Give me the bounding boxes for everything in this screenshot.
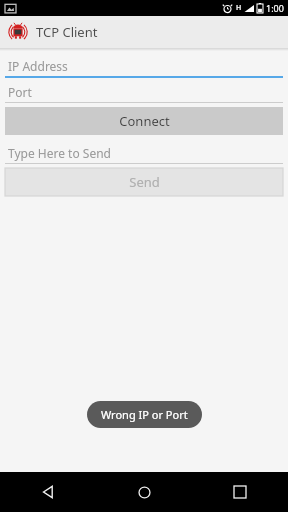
button[interactable]: Home bbox=[96, 472, 192, 512]
button[interactable]: Recent apps bbox=[192, 472, 288, 512]
button[interactable]: Port bbox=[5, 81, 283, 103]
staticText: Port bbox=[8, 84, 32, 100]
button[interactable]: Back bbox=[0, 472, 96, 512]
staticText: TCP Client bbox=[36, 23, 98, 41]
staticText: IP Address bbox=[8, 58, 68, 74]
staticText: Send bbox=[129, 173, 160, 191]
staticText: H bbox=[236, 3, 242, 13]
button[interactable]: Connect bbox=[5, 107, 283, 135]
staticText: Type Here to Send bbox=[8, 145, 111, 161]
staticText: Connect bbox=[119, 112, 170, 130]
button[interactable]: Type Here to Send bbox=[5, 142, 283, 164]
staticText: Wrong IP or Port bbox=[101, 407, 188, 422]
staticText: 1:00 bbox=[266, 2, 284, 14]
button[interactable]: IP Address bbox=[5, 55, 283, 78]
button[interactable]: Send bbox=[5, 168, 283, 196]
